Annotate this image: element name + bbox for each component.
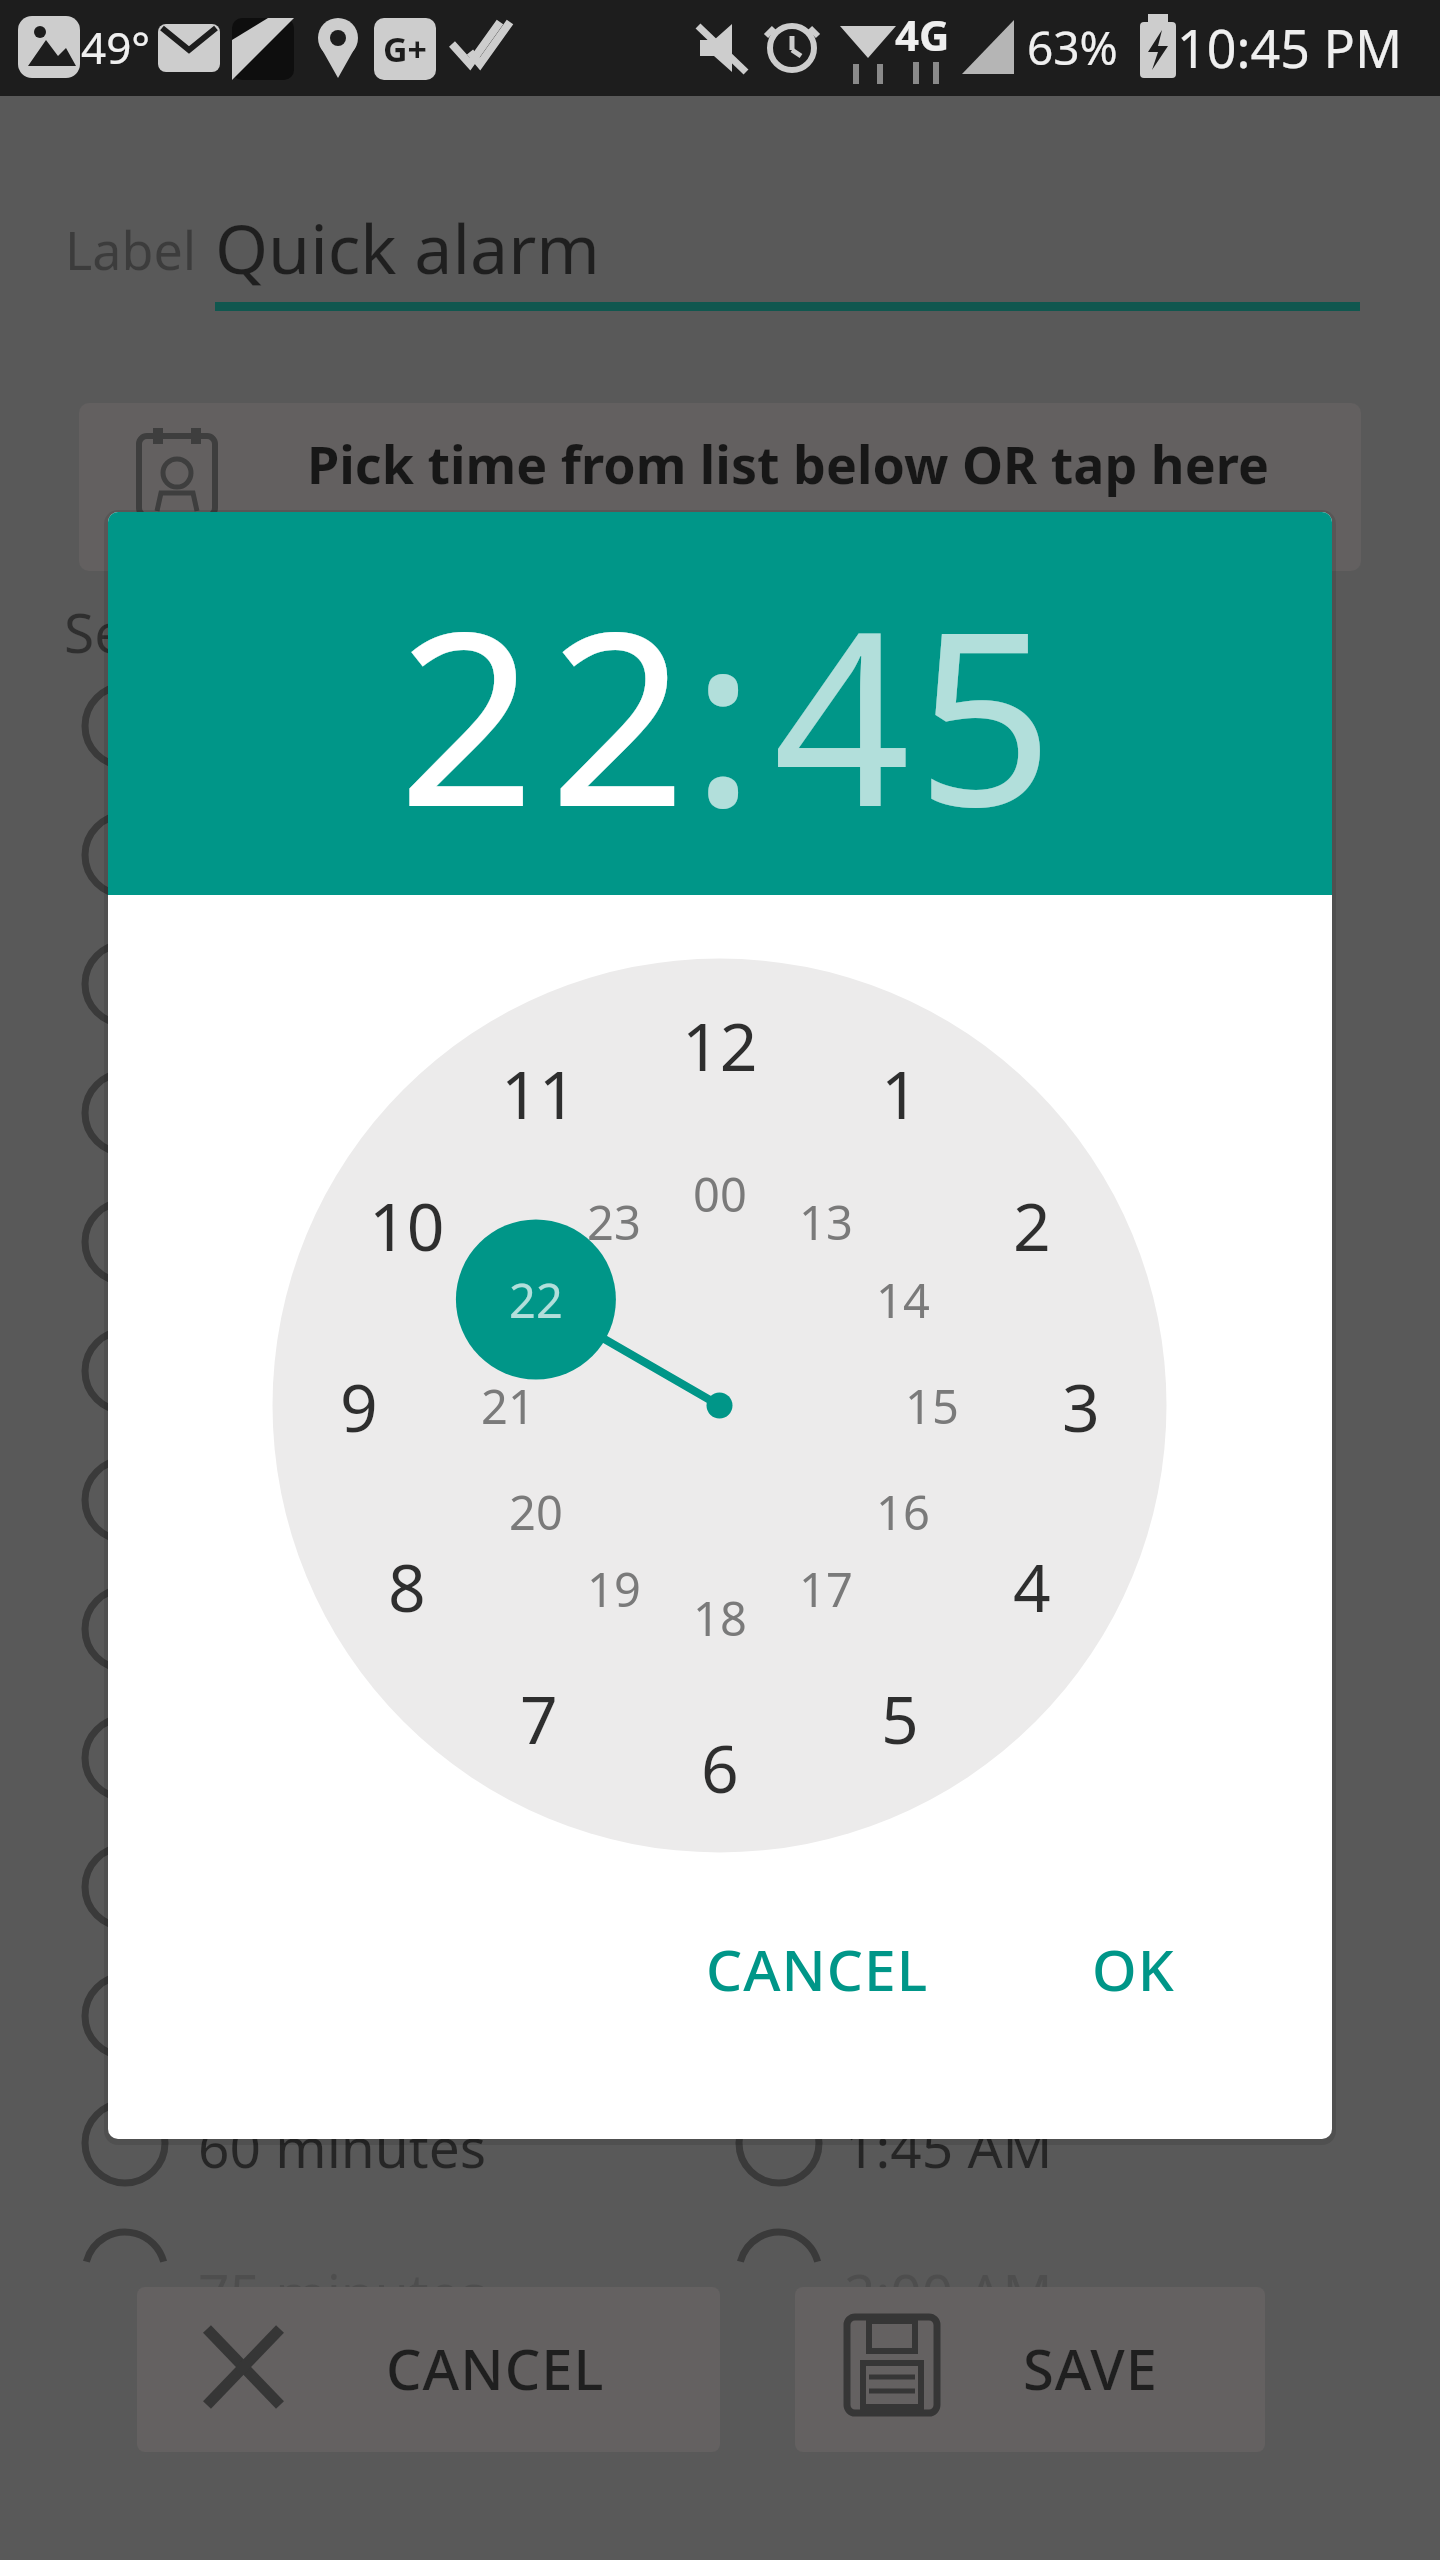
staticText: 22 xyxy=(509,1268,563,1332)
button[interactable] xyxy=(1043,1914,1223,2024)
staticText: 60 minutes xyxy=(198,2109,487,2184)
button[interactable] xyxy=(137,2287,720,2452)
staticText: 7 xyxy=(520,1673,558,1763)
staticText: 75 minutes xyxy=(198,2255,487,2330)
staticText: SAVE xyxy=(1023,2330,1158,2406)
button[interactable] xyxy=(795,2287,1265,2452)
staticText: 8 xyxy=(388,1541,426,1631)
staticText: CANCEL xyxy=(386,2330,605,2406)
staticText: 5 xyxy=(881,1673,919,1763)
staticText: 18 xyxy=(693,1586,747,1650)
staticText: OK xyxy=(1092,1930,1175,2008)
staticText: 17 xyxy=(799,1557,853,1621)
staticText: 4 xyxy=(1013,1541,1051,1631)
staticText: 2 xyxy=(1013,1180,1051,1270)
staticText: 2:00 AM xyxy=(844,2255,1053,2330)
staticText: 3 xyxy=(1062,1361,1100,1451)
staticText: 1:45 AM xyxy=(844,2109,1053,2184)
staticText: 22 xyxy=(398,549,701,876)
staticText: 23 xyxy=(587,1190,641,1254)
staticText: Quick alarm xyxy=(215,201,600,294)
button[interactable] xyxy=(79,403,1361,571)
staticText: 10:45 PM xyxy=(1177,12,1403,83)
staticText: 63% xyxy=(1027,16,1118,79)
staticText: CANCEL xyxy=(706,1930,929,2008)
staticText: 20 xyxy=(509,1480,563,1544)
staticText: 16 xyxy=(876,1480,930,1544)
staticText: : xyxy=(691,549,756,876)
staticText: Select time in xyxy=(64,594,410,669)
staticText: Pick time from list below OR tap here xyxy=(307,428,1269,499)
staticText: 12 xyxy=(682,1000,758,1090)
staticText: 45 xyxy=(773,549,1060,876)
staticText: 6 xyxy=(701,1722,739,1812)
staticText: 4G xyxy=(895,6,950,63)
staticText: 14 xyxy=(876,1268,930,1332)
staticText: 1 xyxy=(881,1048,919,1138)
staticText: 11 xyxy=(501,1048,577,1138)
staticText: 9 xyxy=(340,1361,378,1451)
staticText: 10 xyxy=(369,1180,445,1270)
staticText: 21 xyxy=(481,1374,535,1438)
staticText: 00 xyxy=(693,1162,747,1226)
staticText: 15 xyxy=(905,1374,959,1438)
staticText: 13 xyxy=(799,1190,853,1254)
staticText: Label xyxy=(65,214,197,285)
button[interactable] xyxy=(667,1914,967,2024)
staticText: 49° xyxy=(81,17,151,77)
staticText: G+ xyxy=(383,26,428,72)
staticText: 19 xyxy=(587,1557,641,1621)
